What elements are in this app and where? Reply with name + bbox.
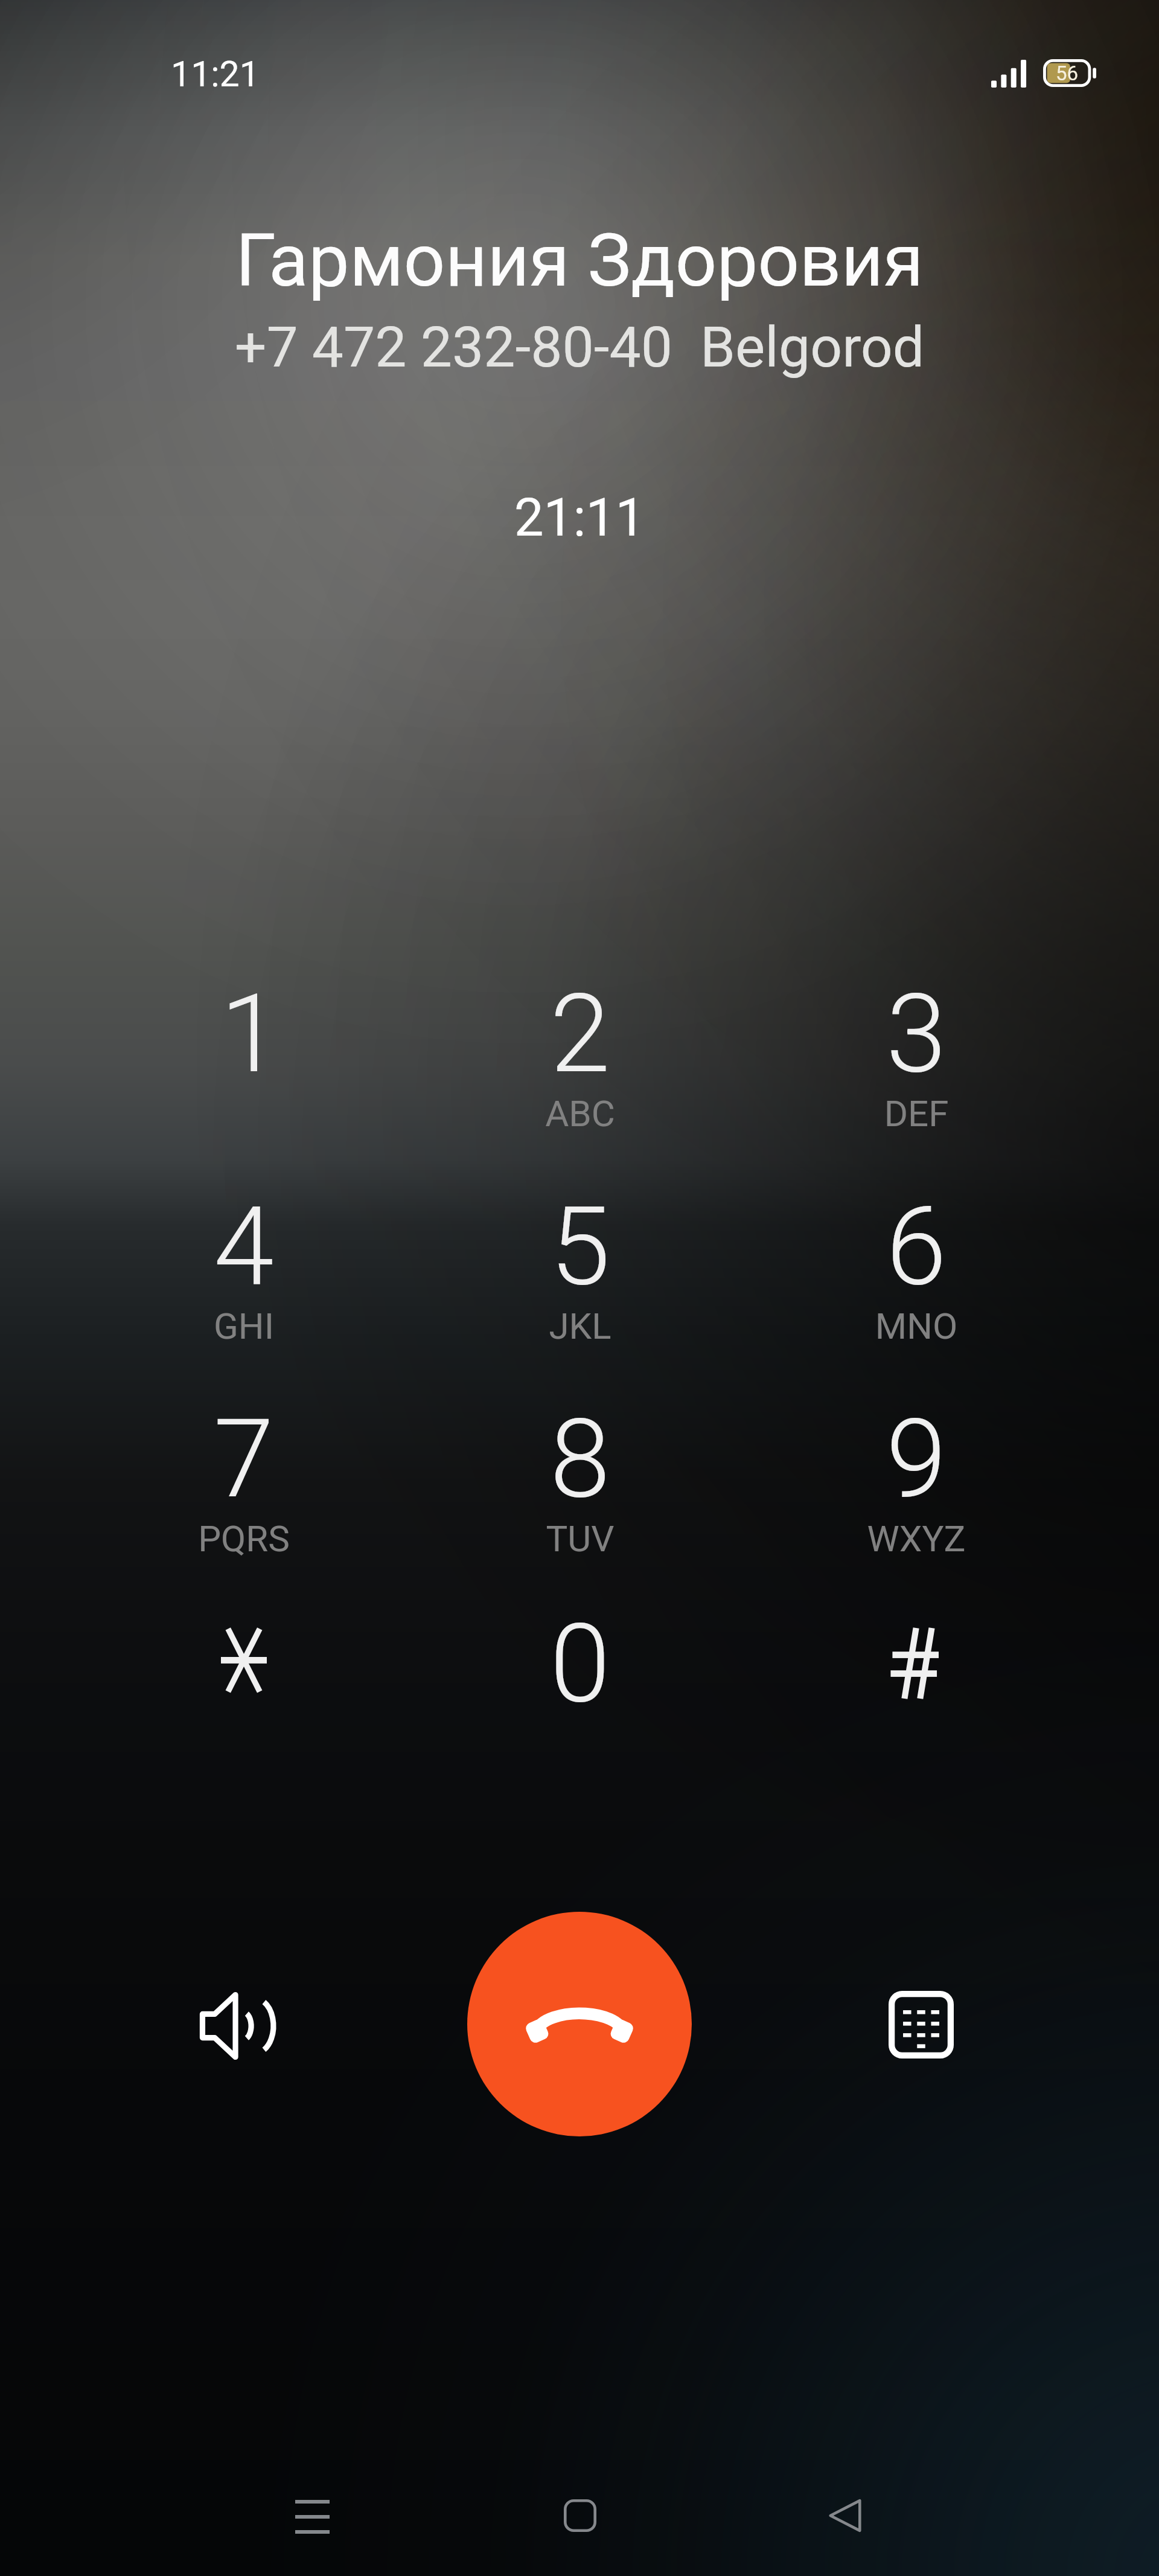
button[interactable]: 6: [753, 1168, 1079, 1376]
button[interactable]: 4: [81, 1168, 407, 1376]
staticText: 2: [417, 970, 743, 1098]
staticText: 21:11: [0, 487, 1159, 548]
button[interactable]: 9: [753, 1381, 1079, 1589]
staticText: DEF: [753, 1092, 1079, 1135]
staticText: 7: [81, 1395, 407, 1523]
button[interactable]: Speaker: [171, 1959, 304, 2092]
staticText: PQRS: [81, 1517, 407, 1560]
staticText: 8: [417, 1395, 743, 1523]
button[interactable]: 3: [753, 956, 1079, 1164]
staticText: GHI: [81, 1305, 407, 1347]
staticText: 9: [753, 1395, 1079, 1523]
staticText: TUV: [417, 1517, 743, 1560]
staticText: WXYZ: [753, 1517, 1079, 1560]
button[interactable]: 7: [81, 1381, 407, 1589]
button[interactable]: 2: [417, 956, 743, 1164]
button[interactable]: 1: [81, 956, 407, 1164]
button[interactable]: End call: [467, 1912, 692, 2136]
staticText: JKL: [417, 1305, 743, 1347]
staticText: 6: [753, 1183, 1079, 1310]
button[interactable]: Keypad: [855, 1958, 988, 2091]
staticText: MNO: [753, 1305, 1079, 1347]
staticText: 5: [417, 1183, 743, 1310]
staticText: ABC: [417, 1092, 743, 1135]
staticText: 4: [81, 1183, 407, 1310]
staticText: 56: [1056, 62, 1079, 85]
button[interactable]: 5: [417, 1168, 743, 1376]
button[interactable]: Back: [791, 2473, 899, 2558]
button[interactable]: Home: [526, 2473, 634, 2558]
button[interactable]: [753, 1586, 1079, 1793]
staticText: 3: [753, 970, 1079, 1098]
button[interactable]: [81, 1586, 407, 1793]
staticText: 1: [88, 970, 413, 1098]
staticText: Гармония Здоровия: [0, 218, 1159, 304]
staticText: 11:21: [171, 53, 260, 95]
button[interactable]: Recent apps: [258, 2473, 366, 2558]
staticText: +7 472 232-80-40 Belgorod: [0, 315, 1159, 380]
button[interactable]: 8: [417, 1381, 743, 1589]
staticText: 0: [417, 1600, 743, 1728]
button[interactable]: 0: [417, 1586, 743, 1793]
